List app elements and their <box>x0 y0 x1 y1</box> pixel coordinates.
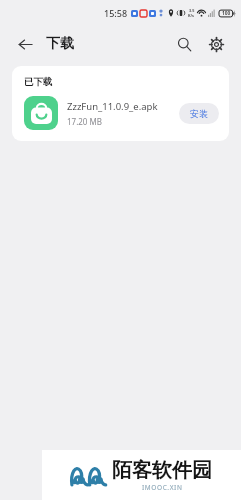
staticText: 下载 <box>46 35 74 53</box>
staticText: 15:58 <box>104 7 128 19</box>
button[interactable]: Settings <box>202 30 230 58</box>
button[interactable]: 安装 <box>179 103 219 124</box>
staticText: 已下载 <box>24 76 53 88</box>
staticText: 安装 <box>190 108 208 119</box>
staticText: K/s <box>188 13 195 18</box>
button[interactable]: ZzzFun_11.0.9_e.apk <box>12 88 229 141</box>
staticText: ZzzFun_11.0.9_e.apk <box>67 100 158 113</box>
staticText: 17.20 MB <box>67 116 102 127</box>
staticText: 3.5 <box>189 8 195 13</box>
button[interactable]: Back <box>11 30 39 58</box>
staticText: 陌客软件园 <box>112 458 212 483</box>
staticText: 100 <box>222 10 231 17</box>
staticText: IMOOC.XIN <box>142 483 183 492</box>
button[interactable]: Search <box>170 30 198 58</box>
